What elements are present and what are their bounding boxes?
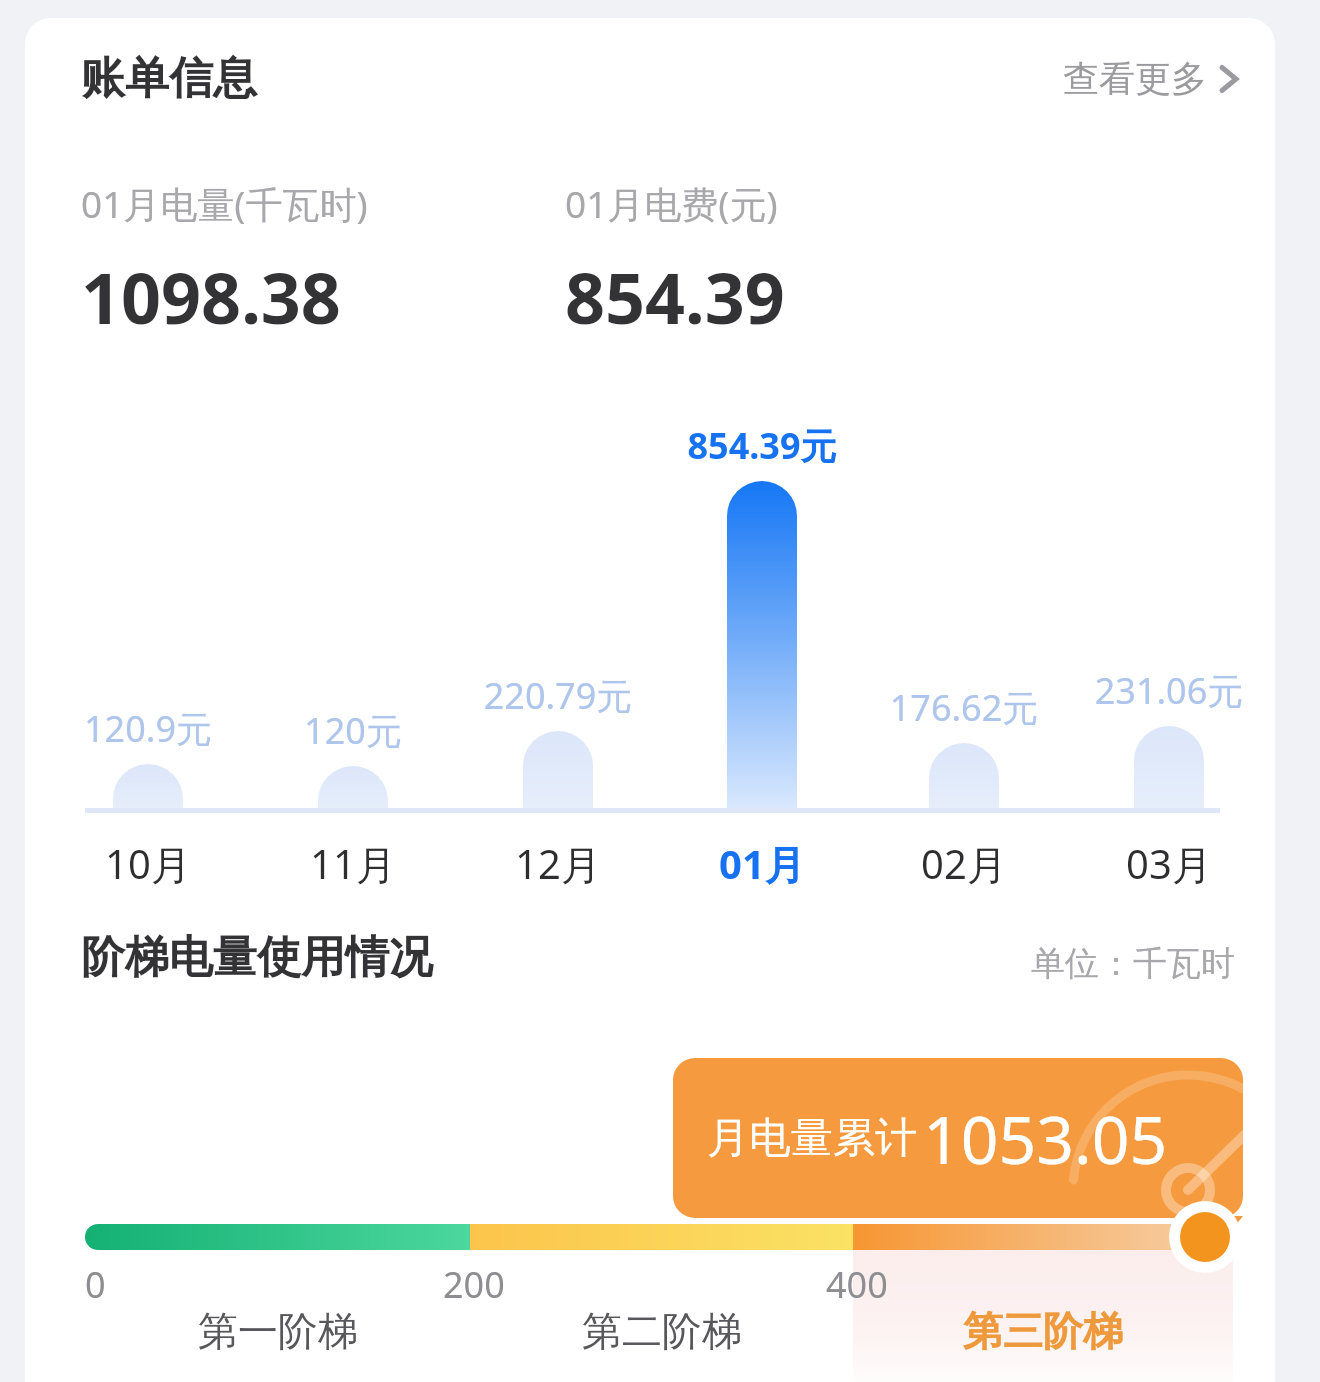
staticText: 12月 (418, 836, 698, 891)
staticText: 第三阶梯 (883, 1306, 1203, 1356)
staticText: 01月电量(千瓦时) (81, 178, 368, 229)
staticText: 400 (826, 1260, 888, 1309)
button[interactable]: 第三阶梯 (883, 1306, 1203, 1356)
staticText: 03月 (1029, 836, 1275, 891)
staticText: 01月电费(元) (565, 178, 778, 229)
staticText: 第二阶梯 (502, 1306, 822, 1356)
staticText: 854.39 (565, 249, 785, 344)
staticText: 10月 (25, 836, 288, 891)
staticText: 200 (443, 1260, 505, 1309)
staticText: 0 (85, 1260, 106, 1309)
staticText: 1098.38 (81, 249, 341, 344)
staticText: 账单信息 (81, 51, 257, 106)
staticText: 月电量累计 (707, 1112, 917, 1165)
staticText: 854.39元 (622, 421, 902, 470)
staticText: 02月 (824, 836, 1104, 891)
staticText: 231.06元 (1029, 666, 1275, 715)
staticText: 单位：千瓦时 (1031, 942, 1235, 985)
staticText: 176.62元 (824, 683, 1104, 732)
staticText: 01月 (622, 836, 902, 891)
staticText: 1053.05 (923, 1093, 1168, 1183)
button[interactable]: 01月 (622, 836, 902, 891)
button[interactable]: 第二阶梯 (502, 1306, 822, 1356)
staticText: 220.79元 (418, 671, 698, 720)
button[interactable]: 月电量累计 (673, 1058, 1243, 1218)
button[interactable]: 03月 (1029, 836, 1275, 891)
button[interactable]: 02月 (824, 836, 1104, 891)
staticText: 120.9元 (25, 704, 288, 753)
button[interactable]: 12月 (418, 836, 698, 891)
staticText: 11月 (213, 836, 493, 891)
button[interactable]: 查看更多 (1057, 48, 1245, 109)
staticText: 阶梯电量使用情况 (81, 930, 433, 985)
staticText: 120元 (213, 706, 493, 755)
staticText: 查看更多 (1063, 56, 1207, 101)
button[interactable]: 第一阶梯 (118, 1306, 438, 1356)
button[interactable]: 11月 (213, 836, 493, 891)
staticText: 第一阶梯 (118, 1306, 438, 1356)
button[interactable]: 10月 (25, 836, 288, 891)
